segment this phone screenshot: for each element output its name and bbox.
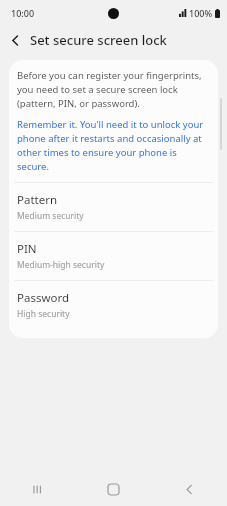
button[interactable]: Password: [9, 281, 218, 329]
button[interactable]: PIN: [9, 232, 218, 280]
staticText: Set secure screen lock: [30, 31, 167, 49]
staticText: PIN: [17, 241, 37, 257]
staticText: 100%: [189, 7, 213, 19]
button[interactable]: Recent apps: [0, 472, 75, 506]
staticText: Remember it. You'll need it to unlock yo…: [17, 118, 210, 173]
staticText: Medium security: [17, 210, 84, 222]
button[interactable]: Home: [75, 472, 151, 506]
staticText: Pattern: [17, 192, 58, 208]
button[interactable]: Pattern: [9, 183, 218, 231]
staticText: Medium-high security: [17, 259, 105, 271]
staticText: Before you can register your fingerprint…: [17, 69, 210, 110]
button[interactable]: Back: [151, 472, 227, 506]
button[interactable]: Back: [0, 26, 30, 54]
staticText: 10:00: [11, 7, 35, 19]
staticText: Password: [17, 290, 70, 306]
staticText: High security: [17, 308, 70, 320]
